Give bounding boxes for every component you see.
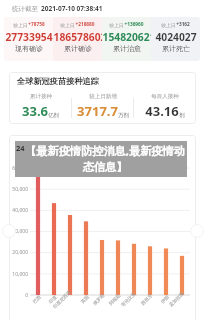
staticText: 较上日 (109, 22, 124, 28)
staticText: 43.16 (145, 102, 179, 120)
staticText: 较上日新增 (89, 93, 117, 100)
staticText: 印度 (47, 294, 59, 306)
staticText: 西班牙 (140, 293, 154, 307)
staticText: 阿根廷 (108, 293, 122, 307)
staticText: 154820621 (102, 30, 151, 44)
staticText: 伊朗 (159, 294, 171, 306)
staticText: 60,000 (9, 165, 28, 172)
staticText: 20,000 (9, 249, 28, 256)
button[interactable]: 累计接种 (9, 93, 72, 120)
staticText: 累计接种 (30, 93, 52, 100)
staticText: 现有确诊 (15, 44, 43, 53)
staticText: 剂 (179, 112, 185, 119)
staticText: +3162 (176, 21, 190, 28)
button[interactable]: 较上日 (102, 17, 151, 61)
staticText: 2021-07-10 07:38:41 (41, 4, 103, 13)
button[interactable]: 较上日 (151, 17, 200, 61)
staticText: 【最新疫情防控消息,最新疫情动 态信息】 (23, 143, 187, 175)
button[interactable]: 较上日 (53, 17, 102, 61)
staticText: +78758 (28, 21, 45, 28)
staticText: 俄罗斯 (92, 293, 106, 307)
staticText: 10,000 (9, 271, 28, 278)
staticText: +218880 (75, 21, 95, 28)
staticText: 累计治愈 (113, 44, 141, 53)
staticText: +136960 (124, 21, 144, 28)
staticText: 50,000 (9, 186, 28, 193)
staticText: 较上日 (60, 22, 75, 28)
button[interactable]: 较上日新增 (72, 93, 134, 120)
staticText: 统计截至 (12, 5, 38, 13)
staticText: 较上日 (161, 22, 176, 28)
staticText: 累计死亡 (162, 44, 190, 53)
staticText: 0 (9, 292, 28, 299)
staticText: 哥伦比亚 (120, 291, 137, 309)
staticText: 全球新冠疫苗接种追踪 (17, 76, 99, 86)
button[interactable]: 每百人接种 (134, 93, 196, 120)
staticText: 巴西 (31, 294, 43, 306)
staticText: 4024027 (155, 30, 197, 44)
staticText: 27733954 (5, 30, 53, 44)
staticText: 较上日 (13, 22, 28, 28)
staticText: 万剂 (118, 112, 129, 119)
staticText: 英国 (79, 294, 91, 306)
staticText: 印度尼西亚 (52, 290, 73, 310)
staticText: 30,000 (9, 228, 28, 235)
button[interactable]: Previous (2, 224, 16, 238)
staticText: 3717.7 (77, 102, 118, 120)
staticText: 孟加拉国 (168, 291, 185, 309)
staticText: 亿剂 (48, 112, 59, 119)
staticText: 24 (16, 143, 25, 153)
button[interactable]: 较上日 (4, 17, 53, 61)
staticText: 33.6 (22, 102, 48, 120)
staticText: 40,000 (9, 207, 28, 214)
staticText: 累计确诊 (64, 44, 92, 53)
button[interactable]: Next (190, 224, 204, 238)
staticText: 每百人接种 (151, 93, 179, 100)
staticText: 186578602 (53, 30, 102, 44)
